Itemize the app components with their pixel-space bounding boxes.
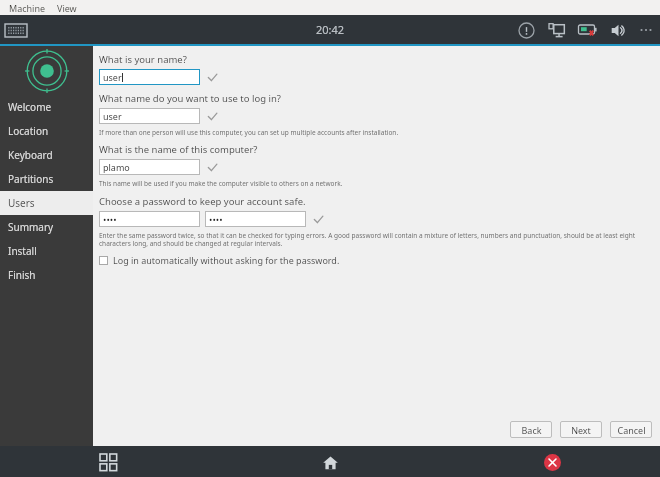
staticText: Back [521,424,542,436]
button[interactable]: View [54,2,80,14]
staticText: Partitions [8,172,54,186]
button[interactable]: Notifications [516,20,536,40]
button[interactable]: Keyboard [4,20,28,40]
staticText: Summary [8,220,54,234]
button[interactable]: Partitions [0,167,93,191]
button[interactable]: Log in automatically without asking for … [99,254,340,266]
button[interactable]: Location [0,119,93,143]
button[interactable]: plamo [99,159,200,175]
staticText: Next [571,424,591,436]
button[interactable]: Battery [576,20,598,40]
staticText: Keyboard [8,148,53,162]
button[interactable]: Cancel [610,421,652,438]
staticText: This name will be used if you make the c… [99,179,343,188]
button[interactable]: Recent apps [95,449,121,475]
button[interactable]: Users [0,191,93,215]
staticText: What is your name? [99,53,187,66]
button[interactable]: user [99,108,200,124]
button[interactable]: Finish [0,263,93,287]
staticText: Location [8,124,49,138]
staticText: 20:42 [316,22,345,37]
button[interactable]: Volume [608,20,628,40]
button[interactable]: •••• [205,211,306,227]
staticText: Users [8,196,35,210]
staticText: View [57,2,77,14]
staticText: What name do you want to use to log in? [99,92,281,105]
button[interactable]: Keyboard [0,143,93,167]
button[interactable]: Close [539,449,565,475]
button[interactable]: More options [638,22,654,38]
staticText: Cancel [617,424,646,436]
staticText: Welcome [8,100,52,114]
button[interactable]: Install [0,239,93,263]
button[interactable]: Welcome [0,95,93,119]
button[interactable]: •••• [99,211,200,227]
button[interactable]: Next [560,421,602,438]
staticText: Choose a password to keep your account s… [99,195,306,208]
staticText: Log in automatically without asking for … [113,254,340,266]
button[interactable]: Display [546,20,566,40]
button[interactable]: Summary [0,215,93,239]
button[interactable]: Machine [6,2,49,14]
staticText: •••• [103,213,117,225]
staticText: Finish [8,268,36,282]
staticText: Machine [9,2,46,14]
button[interactable]: Back [510,421,552,438]
staticText: Install [8,244,37,258]
staticText: plamo [103,161,130,173]
button[interactable]: Home [317,449,343,475]
staticText: What is the name of this computer? [99,143,258,156]
staticText: If more than one person will use this co… [99,128,399,137]
staticText: user [103,71,122,83]
button[interactable]: user [99,69,200,85]
staticText: •••• [209,213,223,225]
staticText: Enter the same password twice, so that i… [99,231,652,248]
staticText: user [103,110,122,122]
